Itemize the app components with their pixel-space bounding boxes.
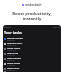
button[interactable]: See all [53, 26, 60, 29]
button[interactable]: Retro notes [4, 61, 60, 66]
staticText: TODAY [4, 26, 12, 29]
button[interactable]: Design review [4, 36, 60, 41]
button[interactable]: Write specs [4, 46, 60, 51]
staticText: 9:00 AM [7, 39, 15, 41]
staticText: 10:30 AM [7, 44, 16, 46]
staticText: 2:00 PM [7, 54, 15, 56]
staticText: 12:00 PM [7, 49, 16, 51]
staticText: Write specs [7, 46, 21, 49]
staticText: Standup sync [7, 41, 23, 44]
button[interactable]: Ship release [4, 56, 60, 61]
staticText: Design review [7, 36, 23, 39]
staticText: Inbox zero [7, 66, 20, 69]
staticText: Your tasks [4, 30, 22, 35]
button[interactable]: Standup sync [4, 41, 60, 46]
staticText: 5:00 PM [7, 69, 15, 71]
staticText: Client call [7, 51, 19, 54]
button[interactable]: Plan tomorrow [4, 71, 60, 72]
button[interactable]: Client call [4, 51, 60, 56]
staticText: Retro notes [7, 61, 21, 64]
staticText: makerdash [25, 3, 42, 7]
staticText: Boost productivity, instantly [0, 11, 64, 21]
staticText: 4:15 PM [7, 64, 15, 66]
staticText: 3:30 PM [7, 59, 15, 61]
button[interactable]: makerdash [0, 3, 64, 7]
button[interactable]: Inbox zero [4, 66, 60, 71]
staticText: Ship release [7, 56, 21, 59]
